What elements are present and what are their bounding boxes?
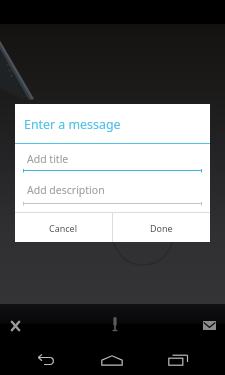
- button[interactable]: Recents: [158, 345, 198, 375]
- button[interactable]: Close: [1, 317, 30, 335]
- button[interactable]: Cancel: [15, 213, 112, 242]
- staticText: Done: [150, 222, 173, 234]
- staticText: Enter a message: [24, 116, 121, 133]
- button[interactable]: Microphone: [101, 310, 129, 338]
- button[interactable]: Done: [113, 213, 210, 242]
- staticText: Add description: [27, 183, 105, 197]
- staticText: Add title: [27, 152, 69, 166]
- button[interactable]: Back: [26, 345, 66, 375]
- button[interactable]: Home: [92, 345, 132, 375]
- staticText: Cancel: [49, 222, 78, 234]
- button[interactable]: Mail: [195, 315, 223, 335]
